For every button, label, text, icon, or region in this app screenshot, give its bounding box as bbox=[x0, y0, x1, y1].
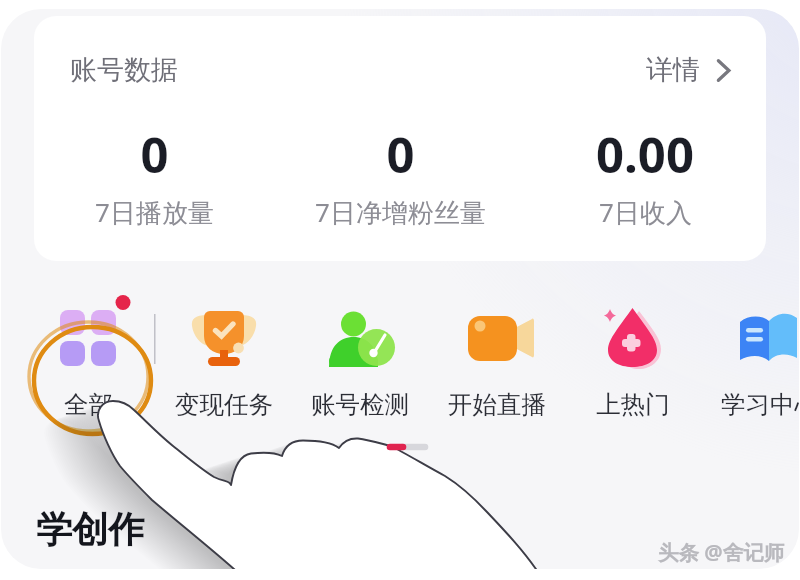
button[interactable]: 详情 bbox=[634, 46, 746, 92]
staticText: 学习中心 bbox=[721, 389, 799, 420]
staticText: 7日播放量 bbox=[95, 194, 214, 230]
staticText: 上热门 bbox=[596, 389, 670, 420]
staticText: 7日收入 bbox=[599, 194, 692, 230]
button[interactable]: 学习中心 bbox=[702, 296, 799, 420]
staticText: 开始直播 bbox=[448, 389, 546, 420]
staticText: 0.00 bbox=[596, 121, 694, 188]
button[interactable]: 开始直播 bbox=[429, 296, 565, 420]
staticText: 账号数据 bbox=[70, 53, 178, 87]
staticText: 学创作 bbox=[36, 507, 144, 552]
button[interactable]: 变现任务 bbox=[156, 296, 292, 420]
other: Highlight 全部 bbox=[20, 310, 170, 450]
staticText: 头条 @舍记师 bbox=[658, 538, 785, 566]
button[interactable]: 账号检测 bbox=[292, 296, 428, 420]
staticText: 账号检测 bbox=[311, 389, 409, 420]
staticText: 7日净增粉丝量 bbox=[315, 194, 486, 230]
staticText: 0 bbox=[386, 121, 415, 188]
staticText: 0 bbox=[140, 121, 169, 188]
staticText: 详情 bbox=[646, 53, 700, 87]
staticText: 变现任务 bbox=[175, 389, 273, 420]
button[interactable]: 上热门 bbox=[565, 296, 701, 420]
button[interactable]: 全部 bbox=[20, 296, 156, 420]
staticText: 全部 bbox=[64, 389, 113, 420]
